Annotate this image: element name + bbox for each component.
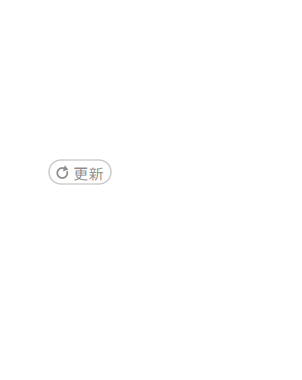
staticText: 更新 [73, 162, 103, 184]
